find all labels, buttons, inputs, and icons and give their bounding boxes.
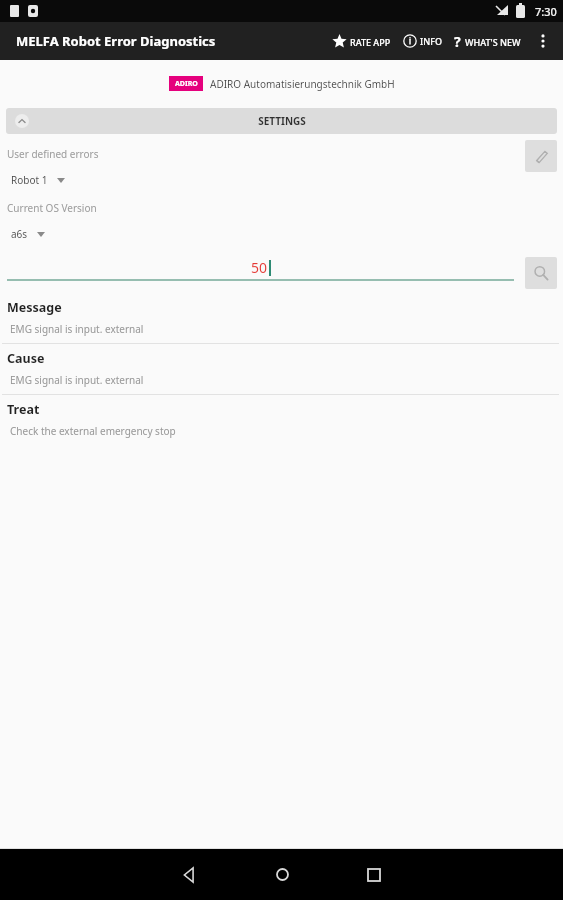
staticText: Robot 1 — [11, 173, 48, 187]
staticText: EMG signal is input. external — [10, 373, 144, 387]
button[interactable]: Robot 1 — [11, 173, 65, 187]
staticText: SETTINGS — [258, 114, 306, 128]
button[interactable]: RATE APP — [326, 28, 397, 55]
button[interactable]: a6s — [11, 227, 45, 241]
button[interactable]: Home — [251, 849, 313, 900]
button[interactable]: Back — [159, 849, 221, 900]
button[interactable]: More options — [527, 22, 559, 60]
staticText: a6s — [11, 227, 28, 241]
staticText: Treat — [7, 401, 40, 418]
staticText: MELFA Robot Error Diagnostics — [16, 32, 216, 50]
staticText: User defined errors — [7, 147, 99, 161]
button[interactable]: Edit — [525, 140, 557, 172]
button[interactable]: ? — [448, 26, 527, 57]
button[interactable]: 50 — [7, 257, 514, 277]
staticText: Message — [7, 299, 62, 316]
staticText: EMG signal is input. external — [10, 322, 144, 336]
staticText: 7:30 — [535, 4, 557, 19]
button[interactable]: INFO — [397, 28, 448, 54]
staticText: ADIRO — [175, 79, 198, 89]
button[interactable]: Search — [525, 257, 557, 289]
staticText: Cause — [7, 350, 45, 367]
button[interactable]: Recent apps — [343, 849, 405, 900]
button[interactable]: SETTINGS — [6, 108, 557, 134]
staticText: Check the external emergency stop — [10, 424, 176, 438]
staticText: WHAT'S NEW — [465, 36, 521, 48]
staticText: RATE APP — [350, 36, 391, 48]
staticText: ? — [454, 32, 461, 51]
staticText: Current OS Version — [7, 201, 97, 215]
staticText: ADIRO Automatisierungstechnik GmbH — [210, 77, 395, 91]
staticText: 50 — [251, 258, 268, 277]
staticText: INFO — [420, 35, 442, 47]
